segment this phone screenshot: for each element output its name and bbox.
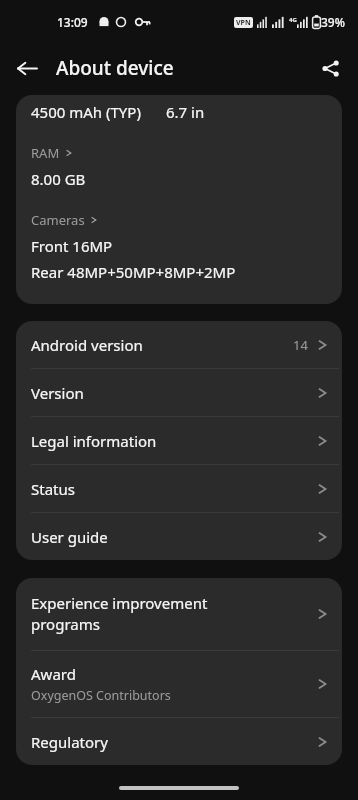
button[interactable]: Back: [7, 48, 47, 88]
staticText: User guide: [31, 527, 108, 547]
button[interactable]: Android version: [16, 321, 342, 369]
button[interactable]: Version: [16, 369, 342, 417]
staticText: 13:09: [57, 14, 88, 30]
staticText: Legal information: [31, 431, 157, 451]
button[interactable]: Experience improvement programs: [16, 578, 342, 651]
staticText: Front 16MP: [31, 236, 113, 256]
staticText: Rear 48MP+50MP+8MP+2MP: [31, 262, 236, 282]
staticText: VPN: [236, 18, 251, 28]
staticText: 6.7 in: [166, 102, 205, 122]
staticText: About device: [56, 55, 174, 81]
staticText: 8.00 GB: [31, 169, 86, 189]
button[interactable]: User guide: [16, 513, 342, 560]
staticText: Experience improvement programs: [31, 593, 208, 635]
button[interactable]: Status: [16, 465, 342, 513]
staticText: OxygenOS Contributors: [31, 687, 171, 704]
button[interactable]: RAM: [31, 144, 73, 162]
button[interactable]: Share: [310, 48, 350, 88]
button[interactable]: Cameras: [31, 211, 98, 229]
button[interactable]: Award: [16, 651, 342, 718]
staticText: Regulatory: [31, 732, 108, 752]
staticText: 14: [293, 336, 308, 354]
staticText: Status: [31, 479, 75, 499]
staticText: Cameras: [31, 211, 85, 229]
staticText: 4G: [289, 16, 297, 24]
staticText: Award: [31, 664, 76, 684]
staticText: Version: [31, 383, 84, 403]
staticText: 39%: [321, 14, 345, 30]
staticText: RAM: [31, 144, 60, 162]
button[interactable]: Legal information: [16, 417, 342, 465]
staticText: Android version: [31, 335, 143, 355]
button[interactable]: Regulatory: [16, 718, 342, 765]
staticText: 4500 mAh (TYP): [31, 102, 141, 122]
